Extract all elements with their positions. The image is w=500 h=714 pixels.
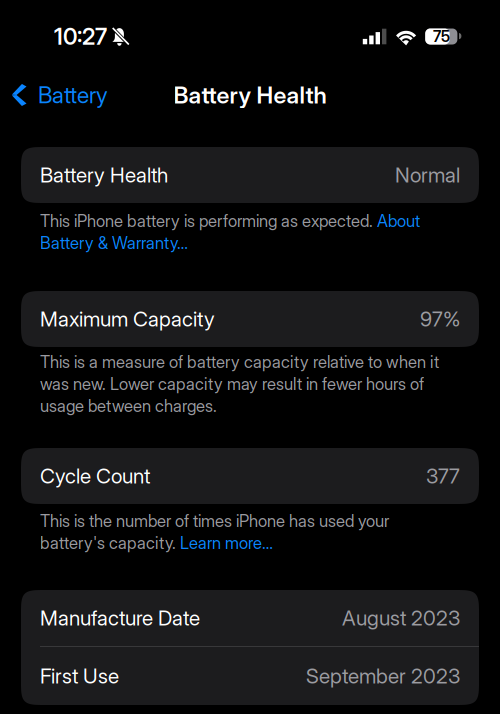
staticText: 10:27 [54,23,107,50]
staticText: This is the number of times iPhone has u… [40,511,389,531]
staticText: Cycle Count [40,463,150,488]
staticText: Battery Health [173,81,326,109]
staticText: Learn more… [180,533,273,553]
staticText: usage between charges. [40,396,217,416]
staticText: About [377,211,420,231]
staticText: September 2023 [306,663,460,688]
staticText: First Use [40,663,119,688]
staticText: was new. Lower capacity may result in fe… [40,374,424,394]
staticText: Battery [38,81,108,109]
staticText: battery's capacity. [40,533,180,553]
staticText: This is a measure of battery capacity re… [40,352,439,372]
staticText: This iPhone battery is performing as exp… [40,211,377,231]
staticText: 75 [433,27,450,46]
button[interactable]: Battery Health [0,147,500,203]
staticText: Normal [395,162,460,187]
staticText: Maximum Capacity [40,306,215,331]
staticText: Battery & Warranty… [40,233,188,253]
staticText: 377 [426,463,460,488]
staticText: Manufacture Date [40,605,200,630]
staticText: 97% [420,306,460,331]
staticText: August 2023 [342,605,460,630]
button[interactable]: Battery [0,73,118,117]
staticText: Battery Health [40,162,168,187]
